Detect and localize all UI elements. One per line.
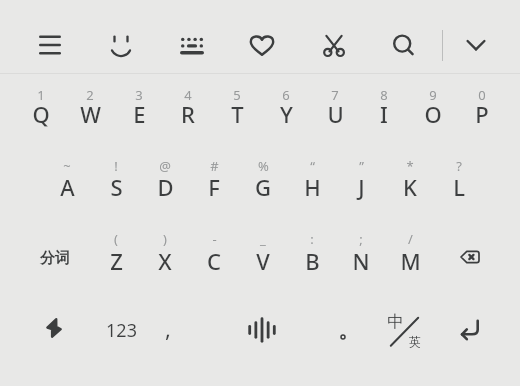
button[interactable] [42, 150, 91, 212]
staticText: O [424, 99, 442, 129]
staticText: 5 [233, 86, 241, 104]
button[interactable] [375, 299, 433, 357]
button[interactable]: Backspace [443, 235, 497, 279]
staticText: ( [114, 230, 118, 248]
button[interactable] [94, 302, 146, 358]
staticText: - [212, 230, 217, 248]
button[interactable] [189, 226, 238, 284]
staticText: 英 [409, 334, 421, 349]
staticText: 123 [106, 318, 137, 343]
staticText: ! [114, 157, 118, 175]
button[interactable] [91, 150, 140, 212]
button[interactable] [311, 77, 360, 139]
button[interactable] [458, 77, 507, 139]
button[interactable] [360, 77, 409, 139]
button[interactable] [91, 226, 140, 284]
button[interactable] [66, 77, 115, 139]
staticText: V [256, 246, 270, 276]
staticText: ? [456, 157, 462, 175]
staticText: % [258, 157, 269, 175]
button[interactable] [317, 302, 369, 358]
button[interactable]: Quick phrases [29, 303, 79, 353]
staticText: T [231, 99, 244, 129]
staticText: * [406, 157, 414, 175]
button[interactable]: Hide keyboard [456, 25, 496, 65]
staticText: 1 [37, 86, 45, 104]
staticText: 6 [282, 86, 290, 104]
staticText: / [408, 230, 413, 248]
button[interactable]: Favorites [240, 23, 284, 67]
button[interactable] [140, 226, 189, 284]
staticText: K [403, 172, 417, 202]
staticText: U [327, 99, 344, 129]
staticText: Y [280, 99, 293, 129]
button[interactable]: Voice input [232, 304, 292, 356]
staticText: ; [359, 230, 363, 248]
staticText: 7 [331, 86, 339, 104]
staticText: G [255, 172, 271, 202]
staticText: N [352, 246, 370, 276]
staticText: “ [310, 157, 315, 175]
staticText: # [210, 157, 219, 175]
button[interactable] [238, 226, 287, 284]
button[interactable] [287, 150, 336, 212]
staticText: 3 [135, 86, 143, 104]
staticText: L [453, 172, 465, 202]
staticText: @ [159, 157, 171, 175]
staticText: S [110, 172, 123, 202]
button[interactable]: Cut [312, 24, 356, 68]
staticText: H [304, 172, 321, 202]
staticText: 中 [387, 311, 404, 332]
staticText: P [475, 99, 489, 129]
button[interactable] [385, 226, 434, 284]
staticText: 2 [86, 86, 94, 104]
staticText: ” [359, 157, 364, 175]
staticText: ~ [63, 157, 71, 175]
button[interactable] [164, 77, 213, 139]
staticText: R [181, 99, 195, 129]
staticText: 4 [184, 86, 192, 104]
staticText: B [305, 246, 320, 276]
button[interactable] [238, 150, 287, 212]
staticText: C [207, 246, 221, 276]
staticText: 分词 [40, 249, 70, 268]
button[interactable] [385, 150, 434, 212]
button[interactable] [145, 302, 191, 358]
staticText: Z [110, 246, 123, 276]
staticText: X [158, 246, 172, 276]
button[interactable] [213, 77, 262, 139]
staticText: , [165, 313, 171, 343]
button[interactable] [262, 77, 311, 139]
staticText: 8 [380, 86, 388, 104]
button[interactable] [24, 228, 86, 286]
button[interactable]: Emoji [99, 23, 143, 67]
staticText: : [310, 230, 314, 248]
staticText: D [157, 172, 174, 202]
staticText: Q [32, 99, 50, 129]
staticText: W [80, 99, 101, 129]
button[interactable] [189, 150, 238, 212]
staticText: ) [163, 230, 167, 248]
staticText: A [60, 172, 75, 202]
staticText: 0 [478, 86, 486, 104]
staticText: E [133, 99, 146, 129]
button[interactable] [434, 150, 483, 212]
button[interactable] [409, 77, 458, 139]
button[interactable]: Enter [444, 305, 496, 355]
button[interactable]: Keyboard [170, 24, 214, 68]
staticText: 9 [429, 86, 437, 104]
button[interactable]: Period [333, 327, 353, 347]
button[interactable] [17, 77, 66, 139]
staticText: F [208, 172, 220, 202]
staticText: _ [260, 230, 266, 248]
staticText: J [358, 172, 365, 202]
button[interactable] [115, 77, 164, 139]
button[interactable]: Search [382, 24, 426, 68]
staticText: I [380, 99, 388, 129]
staticText: M [400, 246, 421, 276]
button[interactable] [336, 150, 385, 212]
button[interactable] [336, 226, 385, 284]
button[interactable] [140, 150, 189, 212]
button[interactable]: Menu [28, 23, 72, 67]
button[interactable] [287, 226, 336, 284]
